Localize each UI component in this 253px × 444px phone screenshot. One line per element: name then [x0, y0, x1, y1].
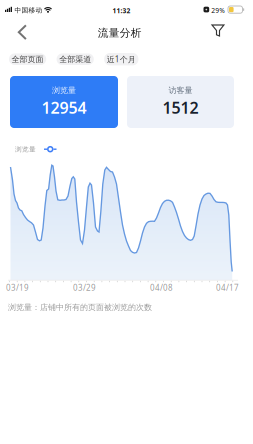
staticText: 29%: [211, 6, 225, 15]
staticText: 近1个月: [107, 54, 136, 64]
staticText: 03/29: [73, 282, 96, 293]
staticText: 中国移动: [14, 6, 42, 14]
button[interactable]: 全部页面: [9, 53, 46, 65]
staticText: 03/19: [6, 282, 29, 293]
button[interactable]: 浏览量: [10, 76, 118, 128]
staticText: 访客量: [168, 85, 192, 95]
button[interactable]: 访客量: [127, 76, 234, 128]
staticText: 全部渠道: [59, 54, 91, 64]
button[interactable]: Back: [13, 20, 35, 44]
staticText: 11:32: [112, 6, 130, 15]
button[interactable]: 近1个月: [104, 53, 138, 65]
staticText: 浏览量: [52, 85, 76, 95]
staticText: 浏览量：店铺中所有的页面被浏览的次数: [8, 302, 152, 312]
staticText: 流量分析: [98, 26, 142, 39]
staticText: 浏览量: [15, 145, 36, 153]
staticText: 12954: [41, 97, 86, 118]
staticText: 04/08: [150, 282, 173, 293]
staticText: 1512: [162, 97, 198, 118]
button[interactable]: Filter: [207, 20, 229, 41]
staticText: 全部页面: [12, 54, 44, 64]
button[interactable]: 全部渠道: [57, 53, 94, 65]
staticText: 04/17: [216, 282, 239, 293]
